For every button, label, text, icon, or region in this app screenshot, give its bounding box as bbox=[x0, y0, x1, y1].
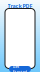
button[interactable]: Get Started bbox=[9, 66, 31, 72]
staticText: Track PDF Builder bbox=[7, 2, 32, 17]
staticText: Get Started bbox=[12, 64, 27, 72]
